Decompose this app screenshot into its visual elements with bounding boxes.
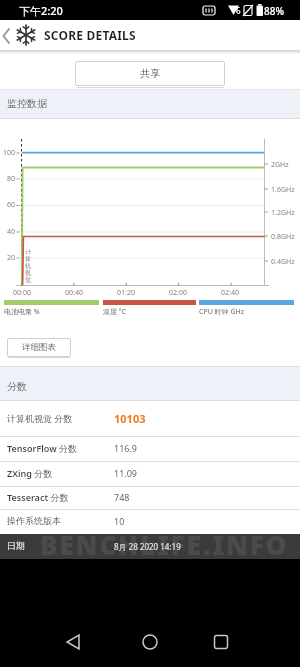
staticText: 0.8GHz — [271, 232, 295, 242]
staticText: TensorFlow 分数 — [7, 442, 77, 454]
staticText: 监控数据 — [7, 97, 47, 110]
staticText: 88% — [264, 4, 284, 18]
button[interactable] — [0, 461, 300, 486]
staticText: 00:00 — [13, 288, 31, 298]
button[interactable]: 共享 — [75, 61, 225, 86]
staticText: 02:40 — [221, 288, 239, 298]
staticText: 01:20 — [117, 288, 135, 298]
button[interactable] — [0, 509, 300, 534]
button[interactable]: 详细图表 — [7, 338, 71, 357]
button[interactable] — [136, 628, 164, 656]
staticText: 116.9 — [114, 442, 138, 454]
staticText: ZXing 分数 — [7, 467, 53, 479]
staticText: 100 — [3, 148, 16, 158]
button[interactable] — [0, 486, 300, 509]
staticText: 11.09 — [114, 467, 138, 479]
staticText: 共享 — [140, 67, 160, 80]
staticText: 8月 28 2020 14:19 — [114, 541, 181, 552]
staticText: 计 算 机 视 觉 — [25, 248, 31, 284]
staticText: 80 — [7, 174, 16, 184]
staticText: 2GHz — [271, 160, 289, 170]
staticText: 0.4GHz — [271, 257, 295, 267]
staticText: 计算机视觉 分数 — [7, 412, 73, 424]
button[interactable] — [0, 534, 300, 559]
button[interactable] — [0, 436, 300, 461]
staticText: CPU 时钟 GHz — [199, 307, 244, 317]
staticText: 20 — [7, 253, 16, 263]
button[interactable] — [0, 400, 300, 436]
staticText: 6 — [236, 5, 241, 16]
staticText: 分数 — [7, 380, 27, 393]
staticText: 温度 °C — [103, 307, 127, 317]
staticText: 1.6GHz — [271, 185, 295, 195]
staticText: 日期 — [7, 540, 25, 551]
staticText: 10 — [114, 515, 125, 527]
staticText: 详细图表 — [22, 342, 56, 353]
staticText: Tesseract 分数 — [7, 491, 69, 503]
staticText: 10103 — [114, 411, 146, 426]
staticText: 电池电量 % — [4, 307, 40, 317]
staticText: 40 — [7, 227, 16, 237]
staticText: 下午2:20 — [19, 3, 63, 18]
button[interactable] — [59, 628, 87, 656]
button[interactable] — [0, 24, 14, 48]
staticText: 00:40 — [65, 288, 83, 298]
staticText: 02:00 — [169, 288, 187, 298]
button[interactable] — [207, 628, 235, 656]
staticText: BENCHLIFE.INFO — [40, 527, 289, 562]
staticText: 1.2GHz — [271, 208, 295, 218]
staticText: 748 — [114, 491, 130, 503]
staticText: 60 — [7, 200, 16, 210]
staticText: SCORE DETAILS — [44, 27, 136, 43]
staticText: 操作系统版本 — [7, 515, 61, 526]
